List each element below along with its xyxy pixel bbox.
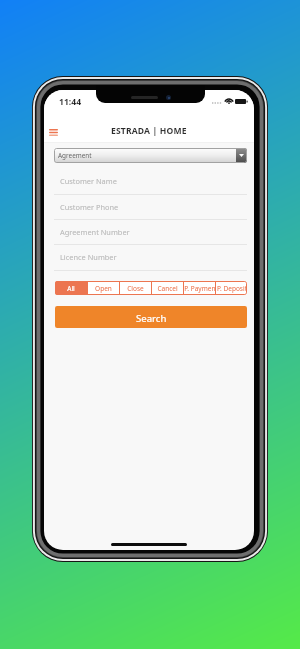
staticText: Agreement [58,151,92,160]
button[interactable]: All [55,281,87,295]
staticText: P. Deposit [217,284,247,293]
button[interactable]: Licence Number [54,244,247,269]
staticText: ESTRADA | HOME [111,125,187,137]
button[interactable]: P. Payment [184,281,215,295]
staticText: Cancel [157,284,178,293]
button[interactable]: Open navigation menu [44,111,67,142]
button[interactable]: P. Deposit [216,281,247,295]
button[interactable]: Agreement [54,148,247,163]
staticText: Close [127,284,144,293]
button[interactable]: Cancel [152,281,183,295]
staticText: 11:44 [59,96,82,108]
button[interactable]: Agreement Number [54,219,247,244]
staticText: Licence Number [60,252,117,262]
staticText: Customer Name [60,176,117,186]
button[interactable]: Customer Phone [54,194,247,219]
button[interactable]: Search [55,306,247,328]
staticText: All [67,284,75,293]
staticText: Search [136,312,167,325]
staticText: Customer Phone [60,202,119,212]
button[interactable]: Open [88,281,119,295]
staticText: P. Payment [184,284,215,293]
button[interactable]: Customer Name [54,168,247,193]
button[interactable]: Close [120,281,151,295]
staticText: Agreement Number [60,227,130,237]
staticText: Open [95,284,112,293]
